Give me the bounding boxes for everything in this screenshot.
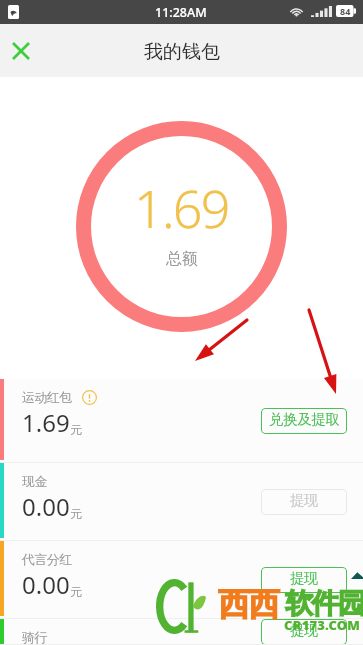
button[interactable]: 现金 [0, 463, 363, 541]
button[interactable]: 骑行 [0, 619, 363, 645]
staticText: 提现 [290, 491, 319, 509]
staticText: 骑行 [22, 629, 47, 645]
staticText: 兑换及提取 [269, 410, 340, 428]
staticText: 元 [70, 584, 82, 599]
button[interactable]: 代言分红 [0, 541, 363, 619]
staticText: CR173.COM [284, 616, 361, 634]
staticText: 总额 [166, 249, 198, 269]
staticText: 西西 [219, 584, 279, 624]
button[interactable]: 提现 [261, 619, 347, 645]
staticText: 我的钱包 [144, 40, 220, 64]
staticText: 元 [70, 422, 82, 437]
button[interactable]: 提现 [261, 567, 347, 593]
staticText: 代言分红 [22, 551, 72, 567]
button[interactable]: Close [0, 26, 46, 76]
button[interactable]: 运动红包 [0, 379, 363, 463]
staticText: 元 [70, 506, 82, 521]
staticText: 1.69 [22, 406, 70, 439]
staticText: 1.69 [134, 172, 229, 243]
staticText: 提现 [290, 621, 319, 639]
staticText: 现金 [22, 473, 47, 489]
staticText: 运动红包 [22, 389, 72, 405]
staticText: 84 [340, 5, 351, 17]
staticText: 0.00 [22, 490, 70, 523]
button[interactable]: 兑换及提取 [261, 408, 347, 434]
staticText: 软件园 [285, 586, 363, 621]
staticText: 11:28AM [155, 4, 207, 21]
staticText: 0.00 [22, 568, 70, 601]
staticText: 提现 [290, 569, 319, 587]
button[interactable]: 提现 [261, 489, 347, 515]
